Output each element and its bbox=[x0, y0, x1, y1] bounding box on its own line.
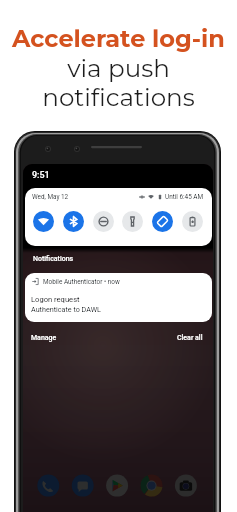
staticText: Clear all bbox=[177, 334, 203, 342]
staticText: via push notifications bbox=[0, 53, 237, 112]
button[interactable]: Manage bbox=[31, 334, 57, 342]
button[interactable]: Bluetooth bbox=[63, 211, 84, 232]
button[interactable]: Do Not Disturb bbox=[93, 211, 114, 232]
staticText: Notifications bbox=[33, 255, 74, 263]
staticText: Mobile Authenticator • now bbox=[43, 278, 120, 286]
button[interactable]: Wi-Fi bbox=[33, 211, 54, 232]
staticText: Authenticate to DAWL bbox=[31, 305, 101, 313]
staticText: Until 6:45 AM bbox=[165, 193, 204, 201]
button[interactable]: Battery Saver bbox=[182, 211, 203, 232]
button[interactable]: Auto-rotate bbox=[152, 211, 173, 232]
button[interactable]: Flashlight bbox=[122, 211, 143, 232]
staticText: Manage bbox=[31, 334, 57, 342]
staticText: 9:51 bbox=[32, 170, 50, 181]
staticText: Accelerate log-in bbox=[0, 24, 237, 53]
staticText: Wed, May 12 bbox=[32, 193, 69, 201]
button[interactable]: Mobile Authenticator • now bbox=[25, 273, 212, 322]
staticText: Logon request bbox=[31, 295, 80, 304]
button[interactable]: Clear all bbox=[177, 334, 203, 342]
